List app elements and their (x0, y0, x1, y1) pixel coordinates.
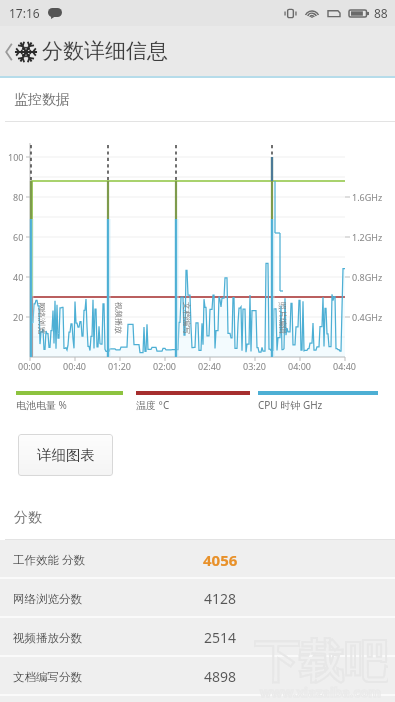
staticText: 分数 (14, 509, 42, 527)
staticText: 分数详细信息 (42, 38, 168, 64)
staticText: 0.4GHz (352, 311, 383, 323)
staticText: 监控数据 (14, 91, 70, 109)
staticText: 4056 (203, 550, 238, 570)
staticText: 88 (374, 5, 388, 21)
button[interactable]: 工作效能 分数 (0, 540, 395, 579)
button[interactable]: Back (1, 32, 17, 72)
staticText: 电池电量 % (16, 398, 67, 412)
staticText: 1.6GHz (352, 191, 383, 203)
staticText: 温度 °C (136, 398, 170, 412)
staticText: 04:00 (288, 360, 312, 372)
staticText: 80 (13, 191, 24, 203)
staticText: 1.2GHz (352, 231, 383, 243)
staticText: 00:00 (18, 360, 42, 372)
staticText: 文档编写 (182, 302, 192, 334)
staticText: 网络浏览分数 (13, 592, 82, 606)
staticText: 02:00 (153, 360, 177, 372)
button[interactable]: 视频播放分数 (0, 618, 395, 657)
staticText: 详细图表 (37, 446, 95, 464)
staticText: 00:40 (63, 360, 87, 372)
staticText: 03:20 (243, 360, 267, 372)
staticText: 照片编辑 (278, 302, 288, 334)
staticText: 工作效能 分数 (13, 552, 85, 568)
staticText: 04:40 (333, 360, 357, 372)
staticText: 0.8GHz (352, 271, 383, 283)
staticText: 视频播放 (114, 302, 124, 334)
staticText: 17:16 (9, 5, 40, 21)
staticText: 20 (13, 311, 24, 323)
staticText: 40 (13, 271, 24, 283)
staticText: 60 (13, 231, 24, 243)
staticText: 4898 (204, 667, 237, 686)
button[interactable]: 网络浏览分数 (0, 579, 395, 618)
staticText: 2514 (204, 628, 237, 647)
staticText: 4128 (204, 589, 237, 608)
staticText: CPU 时钟 GHz (258, 398, 323, 412)
staticText: 网络浏览 (37, 302, 47, 334)
staticText: 视频播放分数 (13, 631, 82, 645)
button[interactable]: 文档编写分数 (0, 657, 395, 696)
staticText: 100 (8, 151, 24, 163)
staticText: 文档编写分数 (13, 670, 82, 684)
staticText: 01:20 (108, 360, 132, 372)
button[interactable]: 详细图表 (18, 434, 113, 476)
staticText: 02:40 (198, 360, 222, 372)
staticText: 下载吧 (254, 634, 388, 691)
